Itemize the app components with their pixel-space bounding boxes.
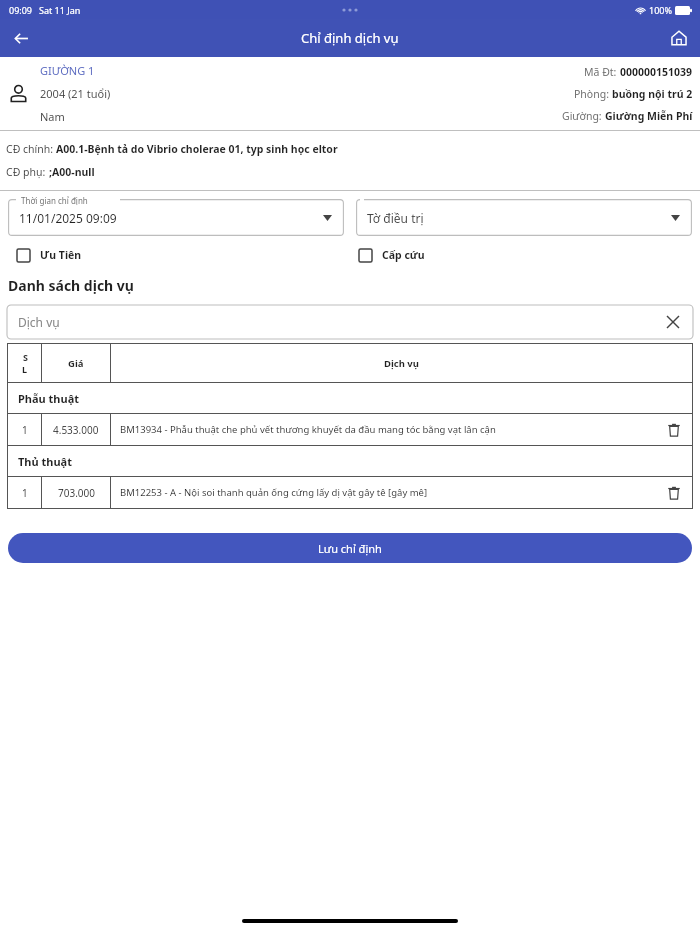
staticText: S — [23, 351, 28, 363]
staticText: Nam — [40, 109, 65, 124]
staticText: CĐ phụ: — [6, 165, 49, 179]
staticText: Thời gian chỉ định — [21, 195, 88, 206]
staticText: Giường Miễn Phí — [605, 109, 693, 123]
staticText: 09:09 Sat 11 Jan — [9, 4, 81, 16]
button[interactable]: Tờ điều trị — [356, 199, 692, 236]
staticText: BM12253 - A - Nội soi thanh quản ống cứn… — [120, 486, 428, 499]
staticText: Giá — [68, 357, 84, 370]
staticText: 2004 (21 tuổi) — [40, 86, 111, 101]
staticText: 11/01/2025 09:09 — [19, 210, 117, 226]
staticText: L — [22, 363, 28, 375]
staticText: Mã Đt: — [584, 65, 620, 79]
button[interactable]: Delete — [662, 481, 686, 505]
staticText: 1 — [22, 486, 28, 500]
staticText: Phòng: — [574, 87, 612, 101]
staticText: Cấp cứu — [382, 248, 425, 262]
button[interactable]: Lưu chỉ định — [8, 533, 692, 563]
button[interactable]: 1 — [7, 414, 693, 445]
button[interactable]: Home — [664, 23, 694, 53]
staticText: 1 — [22, 423, 28, 437]
staticText: Phẫu thuật — [18, 391, 80, 406]
staticText: Giường: — [562, 109, 605, 123]
button[interactable]: Thời gian chỉ định — [8, 199, 344, 236]
staticText: Dịch vụ — [18, 314, 60, 330]
staticText: CĐ chính: — [6, 142, 56, 156]
staticText: Chỉ định dịch vụ — [301, 29, 399, 47]
staticText: Tờ điều trị — [367, 210, 424, 226]
button[interactable]: Ưu Tiên — [8, 246, 82, 264]
staticText: 703.000 — [58, 486, 95, 500]
button[interactable]: Dịch vụ — [7, 305, 693, 339]
staticText: 000000151039 — [620, 65, 693, 79]
staticText: BM13934 - Phẫu thuật che phủ vết thương … — [120, 423, 496, 436]
staticText: GIƯỜNG 1 — [40, 63, 95, 78]
staticText: Thủ thuật — [18, 454, 72, 469]
staticText: 100% — [649, 4, 672, 16]
button[interactable]: Delete — [662, 418, 686, 442]
staticText: A00.1-Bệnh tả do Vibrio cholerae 01, typ… — [56, 142, 338, 156]
button[interactable]: Clear — [661, 310, 685, 334]
staticText: 4.533.000 — [53, 423, 99, 437]
button[interactable]: Cấp cứu — [350, 246, 425, 264]
staticText: ;A00-null — [49, 165, 95, 179]
button[interactable]: Back — [6, 23, 36, 53]
staticText: Lưu chỉ định — [318, 541, 382, 556]
button[interactable]: 1 — [7, 477, 693, 508]
staticText: buồng nội trú 2 — [612, 87, 693, 101]
staticText: Dịch vụ — [384, 357, 419, 370]
staticText: Danh sách dịch vụ — [8, 276, 134, 295]
staticText: Ưu Tiên — [40, 248, 82, 262]
